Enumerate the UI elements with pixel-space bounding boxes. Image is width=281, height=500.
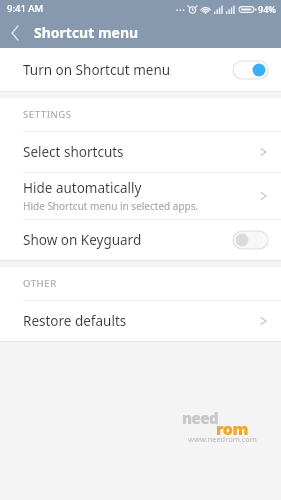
staticText: www.needrom.com <box>188 434 257 444</box>
button[interactable]: Off <box>233 231 268 249</box>
staticText: SETTINGS <box>23 108 72 121</box>
staticText: need <box>182 408 219 428</box>
staticText: Hide automatically <box>23 179 142 197</box>
button[interactable]: Select shortcuts <box>0 132 281 172</box>
button[interactable]: On <box>233 61 268 79</box>
staticText: 9:41 AM <box>7 2 44 15</box>
staticText: 94% <box>258 3 276 15</box>
staticText: OTHER <box>23 277 57 290</box>
staticText: rom <box>216 418 248 440</box>
button[interactable]: Restore defaults <box>0 301 281 341</box>
staticText: Turn on Shortcut menu <box>23 61 171 79</box>
button[interactable]: Show on Keyguard <box>0 220 281 260</box>
staticText: Restore defaults <box>23 312 127 330</box>
button[interactable]: Back <box>0 17 30 48</box>
staticText: Shortcut menu <box>34 23 139 42</box>
button[interactable]: Turn on Shortcut menu <box>0 48 281 91</box>
button[interactable]: Hide automatically <box>0 173 281 219</box>
staticText: Hide Shortcut menu in selected apps. <box>23 199 199 213</box>
staticText: Show on Keyguard <box>23 231 142 249</box>
staticText: Select shortcuts <box>23 143 124 161</box>
